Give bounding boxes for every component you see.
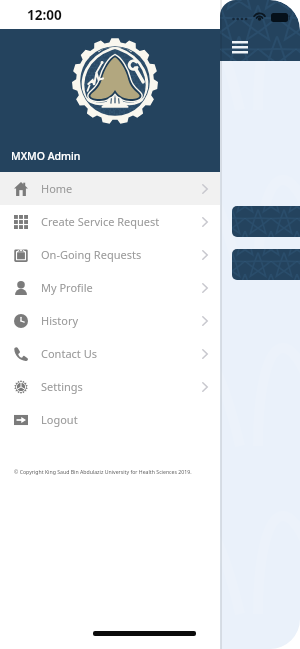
button[interactable] — [232, 206, 300, 237]
button[interactable]: Home — [0, 172, 220, 205]
staticText: 12:00 — [27, 6, 62, 24]
button[interactable]: On-Going Requests — [0, 238, 220, 271]
button[interactable]: My Profile — [0, 271, 220, 304]
button[interactable]: Logout — [0, 403, 220, 436]
staticText: Logout — [41, 412, 78, 427]
staticText: Create Service Request — [41, 214, 160, 229]
staticText: Contact Us — [41, 346, 97, 361]
staticText: © Copyright King Saud Bin Abdulaziz Univ… — [14, 468, 192, 475]
staticText: On-Going Requests — [41, 247, 142, 262]
button[interactable]: History — [0, 304, 220, 337]
staticText: My Profile — [41, 280, 93, 295]
button[interactable] — [232, 249, 300, 280]
staticText: MXMO Admin — [11, 149, 81, 163]
staticText: Settings — [41, 379, 83, 394]
button[interactable]: Contact Us — [0, 337, 220, 370]
staticText: Home — [41, 181, 73, 196]
button[interactable]: Settings — [0, 370, 220, 403]
staticText: History — [41, 313, 79, 328]
button[interactable]: Create Service Request — [0, 205, 220, 238]
button[interactable]: Open navigation menu — [232, 41, 248, 54]
